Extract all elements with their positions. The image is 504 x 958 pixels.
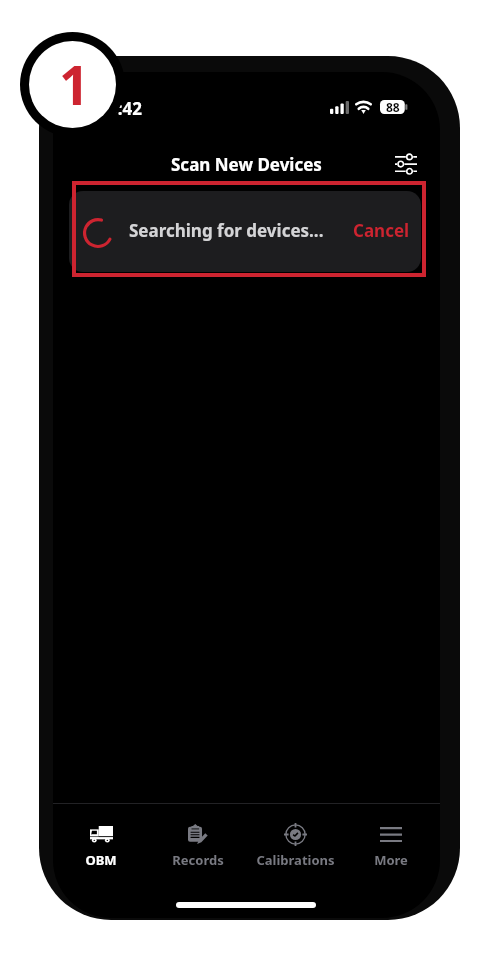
button[interactable]: Cancel [353,219,410,242]
staticText: More [374,851,408,869]
staticText: Calibrations [256,851,335,869]
button[interactable]: OBM [53,820,149,880]
staticText: OBM [85,851,117,869]
staticText: Scan New Devices [171,153,322,176]
staticText: 1 [59,48,90,120]
button[interactable]: Filter settings [391,149,420,178]
staticText: Searching for devices... [129,219,324,242]
staticText: 9:42 [102,97,142,120]
button[interactable]: More [343,820,439,880]
staticText: 88 [386,99,400,115]
button[interactable]: Calibrations [247,820,343,880]
button[interactable]: Records [150,820,246,880]
staticText: Records [172,851,224,869]
button[interactable]: Searching for devices... [69,191,421,272]
